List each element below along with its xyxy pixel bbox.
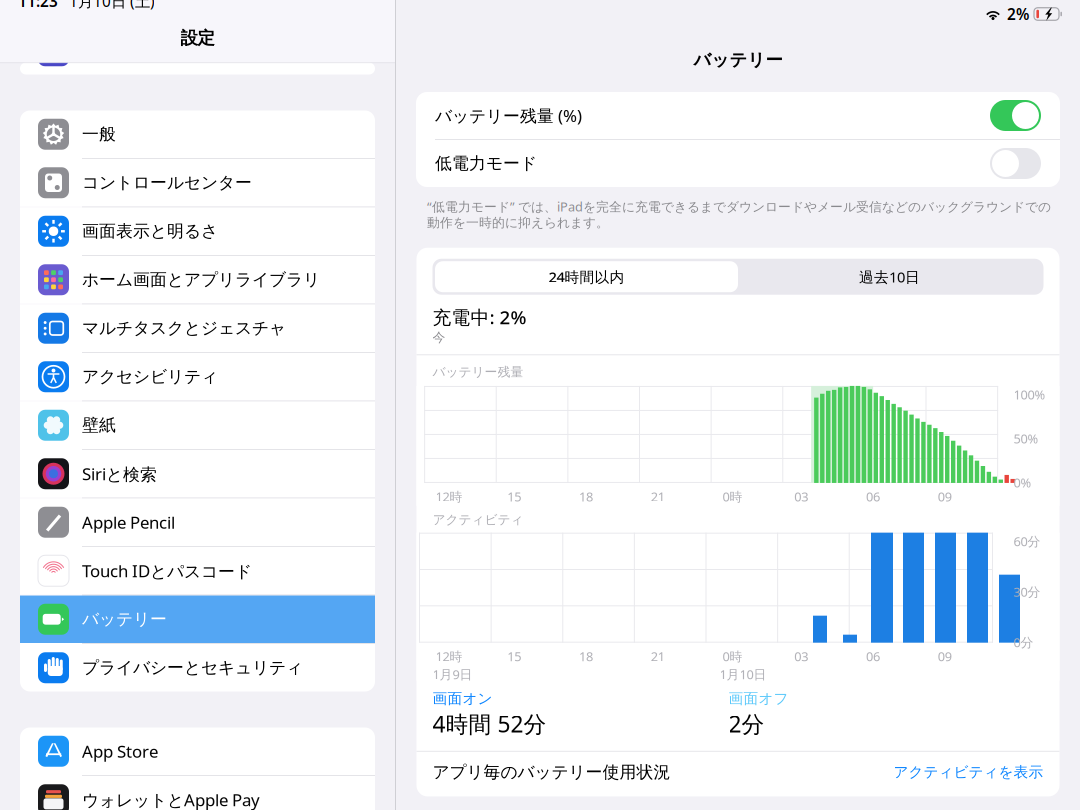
staticText: 15 [507, 648, 521, 665]
staticText: コントロールセンター [82, 172, 252, 193]
staticText: 2% [1007, 4, 1029, 24]
staticText: マルチタスクとジェスチャ [82, 318, 286, 338]
staticText: 60分 [1013, 533, 1040, 550]
staticText: 4時間 52分 [432, 709, 546, 739]
staticText: 画面オン [432, 690, 492, 708]
staticText: プライバシーとセキュリティ [82, 657, 303, 678]
staticText: アクティビティを表示 [893, 763, 1043, 781]
staticText: Apple Pencil [82, 511, 175, 533]
staticText: 03 [794, 488, 808, 505]
button[interactable]: ウォレットとApple Pay [20, 776, 375, 810]
staticText: 充電中: 2% [432, 305, 526, 329]
staticText: アクセシビリティ [82, 366, 218, 387]
button[interactable]: コントロールセンター [20, 159, 375, 206]
staticText: 画面オフ [728, 690, 788, 708]
staticText: 0時 [722, 488, 742, 505]
staticText: 今 [432, 329, 445, 345]
staticText: 11:23 [18, 0, 58, 11]
button[interactable]: Touch IDとパスコード [20, 547, 375, 594]
staticText: “低電力モード” では、iPadを完全に充電できるまでダウンロードやメール受信な… [427, 198, 1051, 231]
staticText: アプリ毎のバッテリー使用状況 [432, 762, 670, 782]
button[interactable]: マルチタスクとジェスチャ [20, 304, 375, 352]
staticText: 30分 [1013, 583, 1040, 600]
staticText: 09 [938, 488, 952, 505]
staticText: 12時 [435, 488, 462, 505]
staticText: 06 [866, 648, 880, 665]
button[interactable]: Apple Pencil [20, 498, 375, 546]
staticText: Siriと検索 [82, 463, 157, 485]
staticText: ホーム画面とアプリライブラリ [82, 269, 320, 290]
staticText: 03 [794, 648, 808, 665]
staticText: 画面表示と明るさ [82, 221, 218, 241]
staticText: 06 [866, 488, 880, 505]
staticText: 100% [1013, 386, 1045, 403]
staticText: 21 [651, 488, 665, 505]
button[interactable]: 24時間以内 [435, 261, 738, 292]
staticText: 24時間以内 [548, 267, 624, 286]
staticText: バッテリー [82, 609, 167, 629]
staticText: App Store [82, 740, 158, 762]
staticText: 21 [651, 648, 665, 665]
staticText: 一般 [82, 124, 116, 144]
button[interactable]: Off [990, 148, 1041, 179]
staticText: 1月9日 [432, 666, 472, 683]
staticText: Touch IDとパスコード [82, 560, 252, 582]
button[interactable]: アクティビティを表示 [893, 763, 1043, 781]
button[interactable]: バッテリー [20, 595, 375, 643]
staticText: 50% [1013, 430, 1038, 447]
staticText: 設定 [180, 27, 214, 48]
staticText: アクティビティ [432, 512, 523, 528]
button[interactable]: アクセシビリティ [20, 353, 375, 400]
button[interactable]: 過去10日 [738, 261, 1041, 292]
staticText: 09 [938, 648, 952, 665]
staticText: バッテリー [693, 49, 782, 71]
staticText: バッテリー残量 (%) [435, 104, 582, 127]
staticText: バッテリー残量 [432, 364, 523, 380]
staticText: 1月10日 [719, 666, 766, 683]
button[interactable]: On [990, 100, 1041, 131]
staticText: 0分 [1013, 634, 1033, 651]
button[interactable]: 壁紙 [20, 401, 375, 449]
staticText: 1月10日 (土) [69, 0, 155, 11]
staticText: 低電力モード [435, 153, 537, 174]
button[interactable]: 画面表示と明るさ [20, 207, 375, 255]
staticText: 0時 [722, 648, 742, 665]
staticText: 18 [579, 648, 593, 665]
button[interactable]: Siriと検索 [20, 450, 375, 497]
button[interactable]: ホーム画面とアプリライブラリ [20, 256, 375, 303]
staticText: 壁紙 [82, 415, 116, 435]
staticText: 2分 [728, 709, 764, 739]
staticText: 過去10日 [859, 267, 920, 286]
staticText: ウォレットとApple Pay [82, 789, 260, 810]
staticText: 12時 [435, 648, 462, 665]
staticText: 0% [1013, 474, 1031, 491]
staticText: 18 [579, 488, 593, 505]
button[interactable]: App Store [20, 727, 375, 775]
staticText: 15 [507, 488, 521, 505]
button[interactable]: 一般 [20, 110, 375, 158]
button[interactable]: プライバシーとセキュリティ [20, 644, 375, 691]
